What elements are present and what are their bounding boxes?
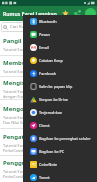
staticText: Membuat Rumus Excel [3,59,71,67]
staticText: Bagikan ke PC [39,149,65,154]
button[interactable]: Favorite [59,6,71,21]
button[interactable]: Catatan Keep [23,54,97,67]
staticText: Tutorial Excel lengkap [3,169,42,174]
staticText: ColorNote [39,162,58,167]
staticText: Dan Nilai Excel [3,120,30,125]
button[interactable]: Bluetooth [23,15,97,28]
staticText: PerkeCondisi Excel [3,174,37,179]
staticText: PerkeCondisi Excel [3,148,37,153]
staticText: Mengopi Rumus Excel [3,105,69,113]
staticText: Facebook [39,71,57,76]
button[interactable]: Tweet [23,171,97,182]
button[interactable]: Direct [23,119,97,132]
staticText: Tweet [39,175,50,180]
staticText: Rumus Excel Lengkap [3,10,57,17]
staticText: Cari Rumus [10,24,33,30]
button[interactable]: Bagikan ke PC [23,145,97,158]
staticText: Direct [39,123,50,128]
staticText: Pengaturan Format Sel [3,133,72,141]
button[interactable]: Share [71,6,83,21]
staticText: Bluetooth [39,19,57,24]
button[interactable]: Pangil Cepat Rumus Excel [0,33,97,55]
staticText: Bagikan ke perangkat seluler [39,136,91,141]
staticText: dengan Fungsi Excel [3,94,40,99]
staticText: Pangil Cepat Rumus Excel [3,37,80,45]
button[interactable]: Mengopi Rumus Excel [0,100,97,128]
staticText: Catatan Keep [39,58,63,63]
staticText: Penggunaan Filter Data [3,159,74,167]
staticText: Tutorial Excel lengkap [3,47,42,52]
button[interactable]: Facebook [23,67,97,80]
staticText: Terjemahkan [39,110,63,115]
staticText: Mengisi Data Otomatis [3,79,72,87]
button[interactable]: Pesan [23,28,97,41]
button[interactable]: Membuat Rumus Excel [0,56,97,76]
button[interactable]: Mengisi Data Otomatis [0,77,97,99]
button[interactable]: Simpan ke Drive [23,93,97,106]
staticText: Tutorial Excel lengkap [3,89,42,94]
staticText: Simpan ke Drive [39,97,68,102]
button[interactable]: Salin ke papan klip [23,80,97,93]
button[interactable]: More options [83,6,97,21]
button[interactable]: ColorNote [23,158,97,171]
button[interactable]: Pengaturan Format Sel [0,129,97,155]
staticText: Tutorial Excel lengkap [3,115,42,120]
button[interactable]: Cari Rumus [1,22,96,32]
staticText: Salin ke papan klip [39,84,73,89]
staticText: Tutorial Excel lengkap [3,69,42,74]
button[interactable]: Penggunaan Filter Data [0,156,97,182]
button[interactable]: Bagikan ke perangkat seluler [23,132,97,145]
button[interactable]: Email [23,41,97,54]
staticText: Email [39,45,49,50]
staticText: Tutorial Excel lengkap [3,143,42,148]
button[interactable]: Terjemahkan [23,106,97,119]
staticText: Pesan [39,32,50,37]
